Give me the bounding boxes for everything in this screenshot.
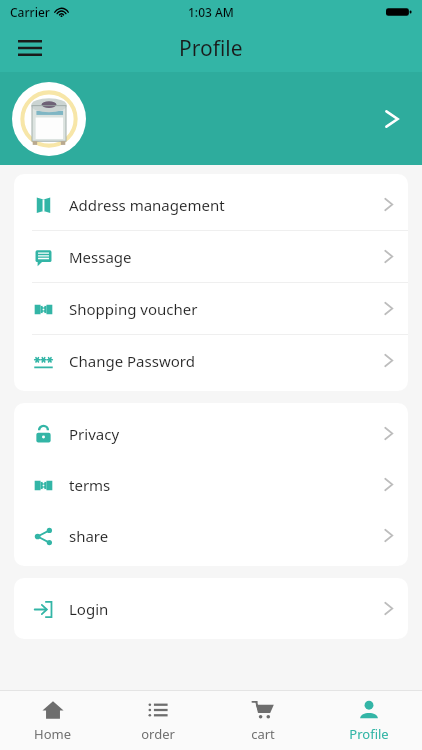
button[interactable]: Home	[0, 691, 105, 750]
button[interactable]: order	[105, 691, 210, 750]
button[interactable]: Profile	[316, 691, 422, 750]
button[interactable]: Message	[14, 231, 408, 282]
staticText: 1:03 AM	[188, 4, 234, 20]
staticText: Carrier	[10, 4, 50, 20]
button[interactable]: Shopping voucher	[14, 283, 408, 334]
button[interactable]: Login	[14, 583, 408, 634]
button[interactable]: Menu	[8, 26, 52, 70]
staticText: Profile	[179, 34, 243, 63]
button[interactable]: terms	[14, 459, 408, 510]
staticText: cart	[251, 725, 275, 743]
staticText: Change Password	[69, 351, 195, 371]
staticText: Home	[34, 725, 71, 743]
staticText: terms	[69, 475, 111, 495]
button[interactable]: share	[14, 510, 408, 561]
staticText: order	[141, 725, 175, 743]
button[interactable]: Change Password	[14, 335, 408, 386]
staticText: Privacy	[69, 424, 120, 444]
staticText: Address management	[69, 195, 225, 215]
staticText: Shopping voucher	[69, 299, 198, 319]
staticText: Profile	[349, 725, 389, 743]
button[interactable]: cart	[210, 691, 316, 750]
button[interactable]: Privacy	[14, 408, 408, 459]
staticText: share	[69, 526, 109, 546]
staticText: Login	[69, 599, 109, 619]
button[interactable]	[0, 72, 422, 165]
staticText: Message	[69, 247, 132, 267]
button[interactable]: Address management	[14, 179, 408, 230]
